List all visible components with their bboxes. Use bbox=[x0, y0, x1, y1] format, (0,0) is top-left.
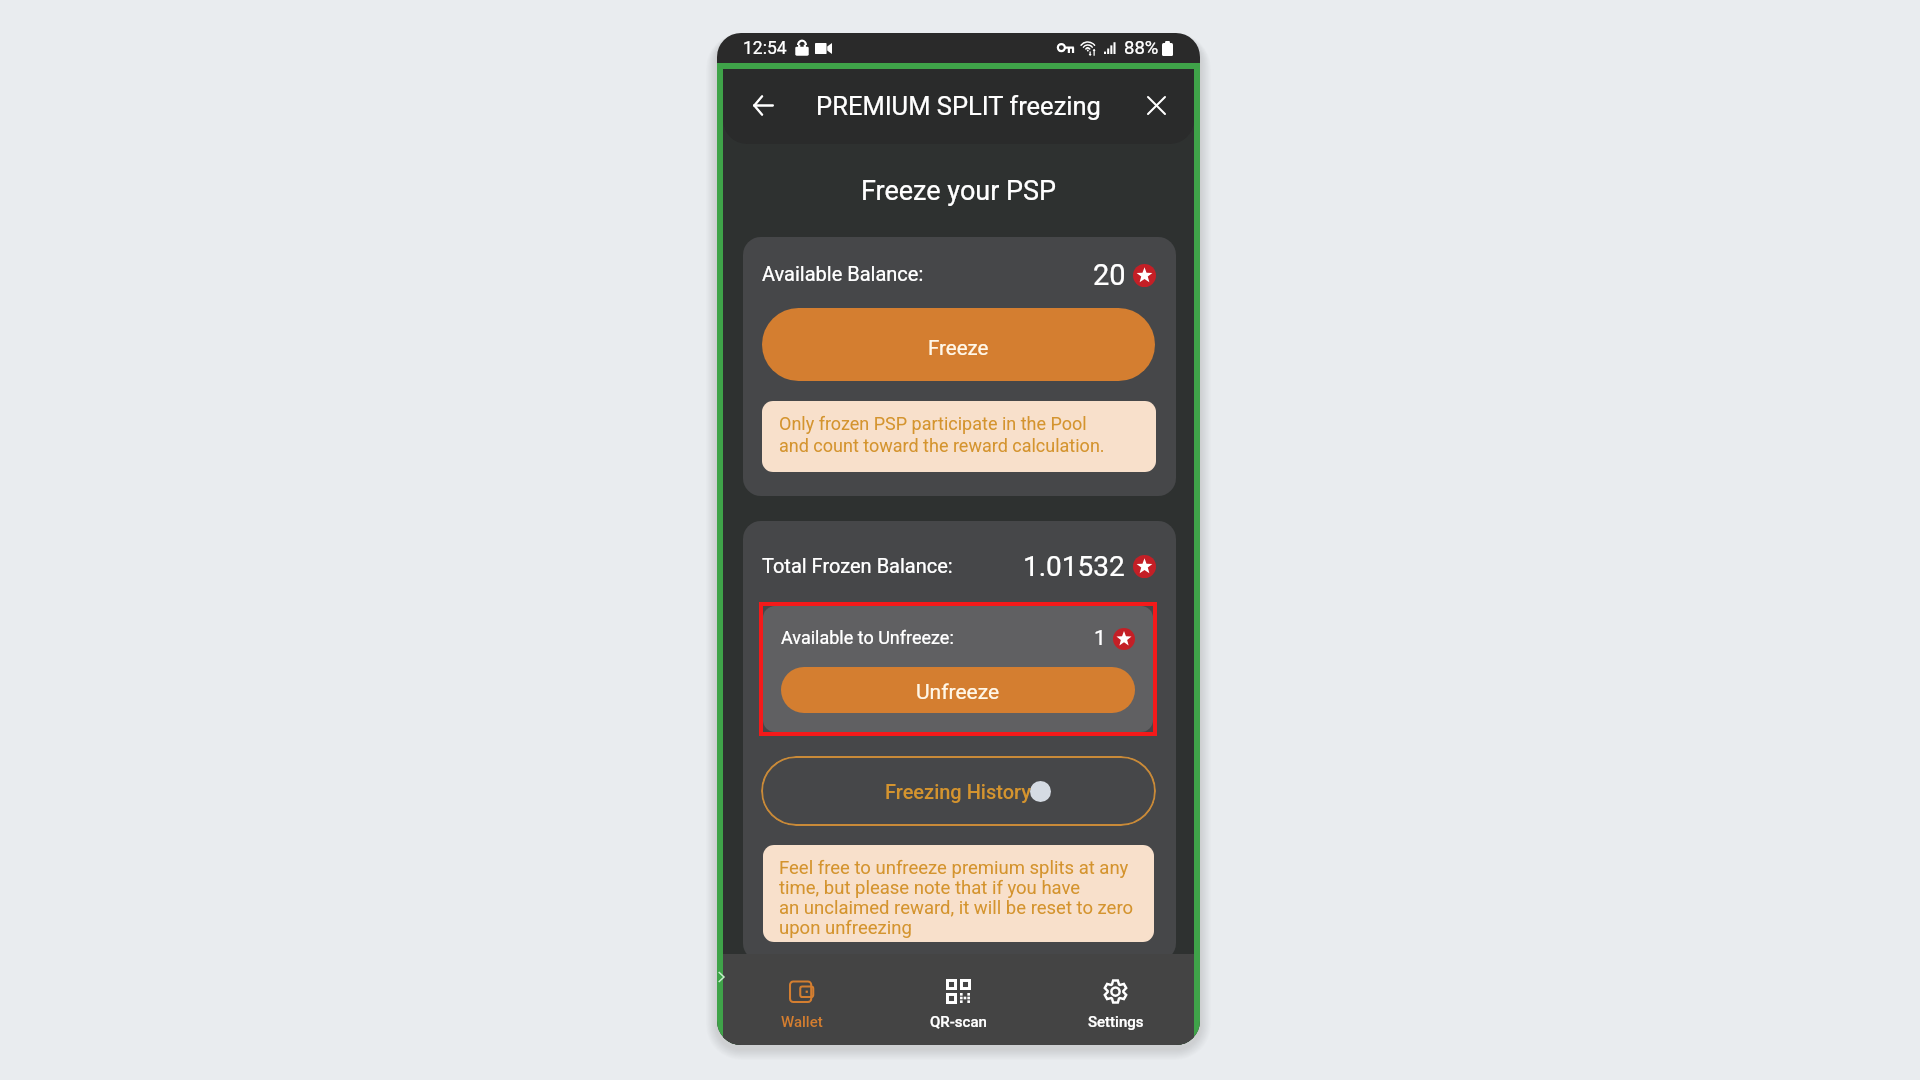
staticText: Wallet bbox=[781, 1013, 823, 1031]
button[interactable]: Back bbox=[741, 83, 785, 127]
staticText: Freezing History bbox=[885, 780, 1032, 803]
staticText: 12:54 bbox=[743, 38, 787, 59]
button[interactable]: Wallet bbox=[723, 954, 880, 1045]
staticText: QR-scan bbox=[930, 1013, 987, 1031]
staticText: Available to Unfreeze: bbox=[781, 627, 954, 648]
staticText: Feel free to unfreeze premium splits at … bbox=[779, 857, 1134, 938]
staticText: Unfreeze bbox=[916, 680, 1000, 705]
staticText: 1 bbox=[1094, 626, 1106, 651]
staticText: 1.01532 bbox=[1023, 550, 1125, 583]
staticText: 88% bbox=[1124, 37, 1159, 59]
staticText: Settings bbox=[1088, 1013, 1144, 1031]
button[interactable]: Freezing History bbox=[761, 756, 1156, 826]
button[interactable]: Settings bbox=[1037, 954, 1194, 1045]
button[interactable]: QR-scan bbox=[880, 954, 1037, 1045]
staticText: Freeze your PSP bbox=[861, 175, 1057, 207]
button[interactable]: Unfreeze bbox=[781, 667, 1135, 713]
staticText: Total Frozen Balance: bbox=[762, 554, 953, 577]
button[interactable]: Freeze bbox=[762, 308, 1155, 381]
button[interactable]: Close bbox=[1134, 83, 1178, 127]
staticText: 20 bbox=[1093, 258, 1126, 292]
staticText: Freeze bbox=[928, 336, 989, 360]
staticText: PREMIUM SPLIT freezing bbox=[723, 91, 1194, 121]
staticText: Available Balance: bbox=[762, 262, 924, 285]
staticText: Only frozen PSP participate in the Pool … bbox=[779, 413, 1105, 456]
